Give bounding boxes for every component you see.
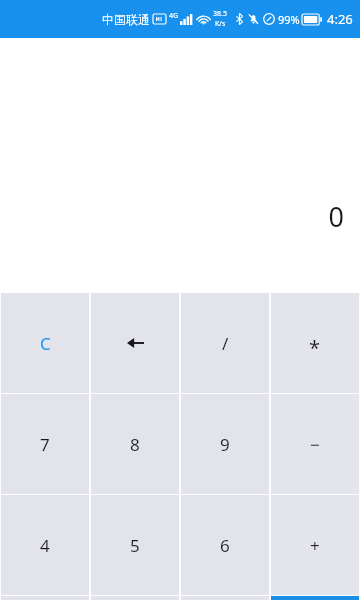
staticText: / [222, 332, 229, 355]
staticText: 4:26 [327, 10, 353, 28]
button[interactable]: / [181, 293, 269, 393]
staticText: 中国联通 [102, 12, 150, 27]
button[interactable]: + [271, 495, 359, 595]
staticText: C [40, 332, 51, 355]
staticText: + [310, 534, 320, 557]
button[interactable]: 6 [181, 495, 269, 595]
staticText: 7 [40, 433, 50, 456]
staticText: − [310, 433, 320, 456]
button[interactable]: − [271, 394, 359, 494]
staticText: 8 [130, 433, 140, 456]
button[interactable]: 9 [181, 394, 269, 494]
staticText: 99% [278, 12, 300, 27]
staticText: * [309, 334, 321, 361]
button[interactable]: 7 [1, 394, 89, 494]
staticText: 4G [169, 11, 179, 21]
staticText: 6 [220, 534, 230, 557]
button[interactable]: 5 [91, 495, 179, 595]
staticText: 9 [220, 433, 230, 456]
staticText: K/s [215, 19, 226, 29]
button[interactable]: C [1, 293, 89, 393]
staticText: 0 [328, 198, 344, 235]
button[interactable]: 4 [1, 495, 89, 595]
button[interactable]: * [271, 293, 359, 393]
staticText: 38.5 [213, 9, 227, 19]
staticText: 5 [130, 534, 140, 557]
button[interactable]: 8 [91, 394, 179, 494]
staticText: 4 [40, 534, 50, 557]
button[interactable]: Backspace [91, 293, 179, 393]
